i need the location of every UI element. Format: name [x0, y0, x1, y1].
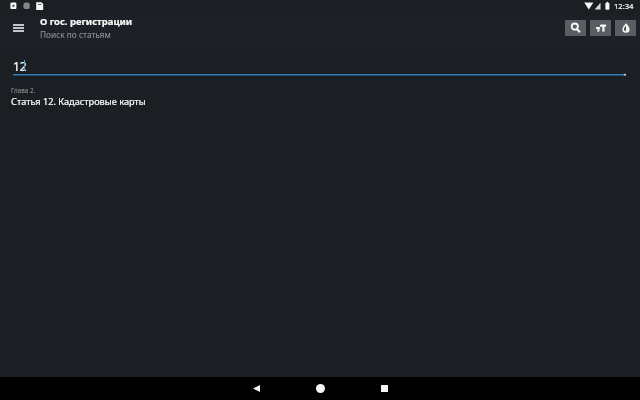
- button[interactable]: Home: [308, 376, 332, 400]
- staticText: Статья 12. Кадастровые карты: [11, 95, 146, 108]
- staticText: Глава 2.: [11, 86, 36, 95]
- button[interactable]: Back: [244, 376, 268, 400]
- staticText: 12:34: [614, 1, 634, 11]
- button[interactable]: Поиск по статьям: [13, 58, 626, 76]
- button[interactable]: Search: [565, 20, 586, 36]
- staticText: Поиск по статьям: [40, 29, 111, 40]
- button[interactable]: Глава 2.: [0, 84, 640, 108]
- staticText: О гос. регистрации: [40, 15, 133, 28]
- staticText: 12: [13, 58, 27, 74]
- button[interactable]: Text size: [590, 20, 611, 36]
- button[interactable]: Menu: [6, 16, 30, 40]
- button[interactable]: Contrast: [615, 20, 636, 36]
- button[interactable]: Recents: [372, 376, 396, 400]
